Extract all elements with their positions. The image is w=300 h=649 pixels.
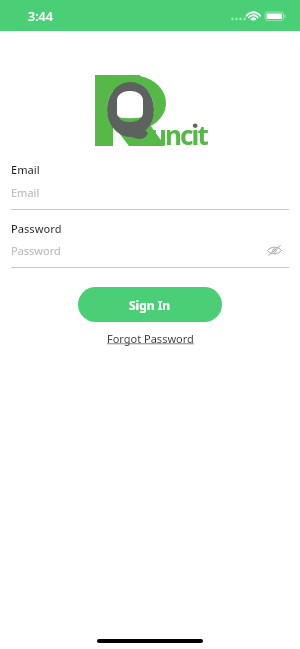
button[interactable]: Show password: [265, 241, 284, 260]
staticText: Password: [11, 221, 62, 236]
staticText: 3:44: [28, 8, 53, 25]
staticText: Password: [11, 243, 61, 258]
staticText: Email: [11, 162, 40, 177]
staticText: Forgot Password: [107, 331, 194, 346]
staticText: Email: [11, 185, 40, 200]
staticText: uncit: [150, 117, 207, 152]
button[interactable]: Forgot Password: [101, 329, 200, 348]
staticText: Sign In: [129, 297, 171, 313]
button[interactable]: Sign In: [78, 287, 222, 322]
